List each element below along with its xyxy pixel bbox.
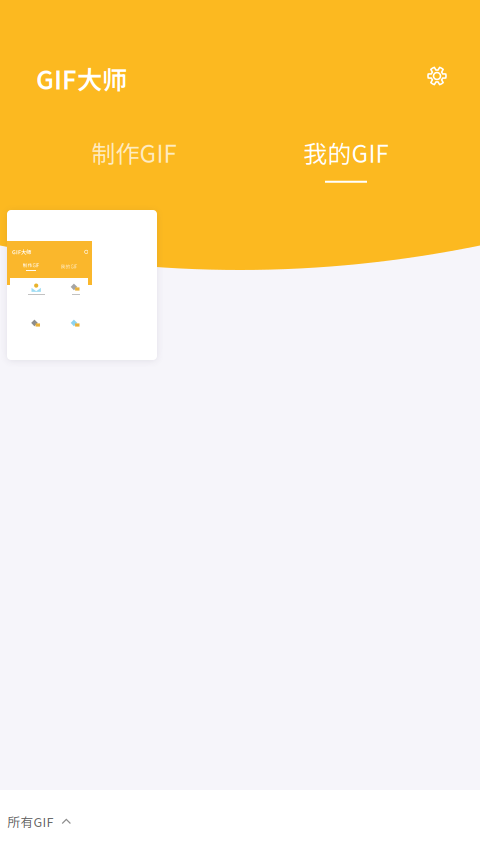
button[interactable]: 制作GIF: [59, 120, 209, 188]
staticText: 所有GIF: [7, 812, 53, 831]
staticText: 我的GIF: [60, 263, 77, 270]
staticText: GIF大师: [36, 60, 127, 97]
button[interactable]: Settings: [415, 54, 459, 98]
button[interactable]: GIF: [7, 210, 157, 360]
button[interactable]: 我的GIF: [271, 120, 421, 188]
staticText: 制作GIF: [22, 262, 39, 269]
staticText: GIF大师: [12, 248, 31, 256]
staticText: 我的GIF: [303, 135, 388, 170]
staticText: 制作GIF: [91, 135, 176, 170]
button[interactable]: 所有GIF: [0, 790, 480, 853]
